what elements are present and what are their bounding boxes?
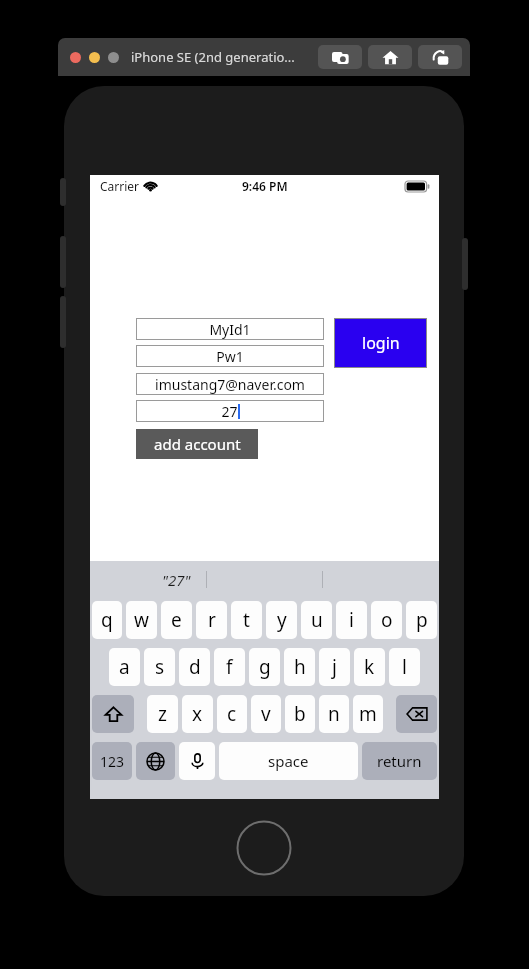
button[interactable]: t [231, 601, 262, 639]
staticText: k [364, 654, 375, 680]
button[interactable]: o [371, 601, 402, 639]
button[interactable]: add account [136, 429, 258, 459]
button[interactable]: space [219, 742, 358, 780]
staticText: u [311, 607, 323, 633]
button[interactable]: imustang7@naver.com [136, 373, 324, 395]
button[interactable]: r [196, 601, 227, 639]
button[interactable]: Change keyboard [136, 742, 175, 780]
staticText: p [416, 607, 428, 633]
button[interactable]: Home [236, 820, 292, 876]
button[interactable]: x [182, 695, 213, 733]
button[interactable]: n [319, 695, 349, 733]
button[interactable]: Dictate [179, 742, 215, 780]
button[interactable]: y [266, 601, 297, 639]
button[interactable]: v [251, 695, 281, 733]
staticText: e [171, 607, 182, 633]
staticText: imustang7@naver.com [155, 375, 305, 394]
button[interactable]: g [249, 648, 280, 686]
staticText: 9:46 PM [242, 178, 288, 194]
staticText: n [328, 701, 340, 727]
button[interactable]: Rotate [418, 45, 462, 69]
button[interactable]: e [161, 601, 192, 639]
button[interactable]: b [285, 695, 315, 733]
button[interactable]: Screenshot [318, 45, 362, 69]
staticText: o [381, 607, 393, 633]
button[interactable]: return [362, 742, 437, 780]
staticText: a [119, 654, 130, 680]
button[interactable]: a [109, 648, 140, 686]
staticText: login [362, 332, 400, 354]
button[interactable]: Pw1 [136, 345, 324, 367]
staticText: return [377, 751, 422, 771]
button[interactable]: d [179, 648, 210, 686]
button[interactable]: w [126, 601, 157, 639]
staticText: b [294, 701, 306, 727]
staticText: g [259, 654, 271, 680]
button[interactable]: c [217, 695, 247, 733]
button[interactable]: s [144, 648, 175, 686]
staticText: 123 [100, 752, 125, 771]
button[interactable]: i [336, 601, 367, 639]
button[interactable]: 27 [136, 400, 324, 422]
staticText: MyId1 [209, 320, 251, 339]
button[interactable]: MyId1 [136, 318, 324, 340]
staticText: space [268, 751, 309, 771]
button[interactable]: j [319, 648, 350, 686]
staticText: m [359, 701, 377, 727]
button[interactable]: l [389, 648, 420, 686]
staticText: v [261, 701, 271, 727]
button[interactable] [70, 52, 81, 63]
staticText: f [226, 654, 233, 680]
button[interactable]: k [354, 648, 385, 686]
button[interactable] [89, 52, 100, 63]
staticText: w [134, 607, 149, 633]
staticText: Pw1 [216, 347, 244, 366]
staticText: 27 [221, 402, 238, 421]
staticText: i [349, 607, 354, 633]
staticText: t [243, 607, 250, 633]
staticText: Carrier [100, 178, 140, 194]
button[interactable]: Shift [92, 695, 134, 733]
staticText: s [155, 654, 165, 680]
button[interactable]: Backspace [396, 695, 437, 733]
staticText: z [158, 701, 167, 727]
button[interactable]: u [301, 601, 332, 639]
button[interactable]: m [353, 695, 383, 733]
staticText: l [402, 654, 407, 680]
button[interactable]: 123 [92, 742, 132, 780]
button[interactable]: h [284, 648, 315, 686]
staticText: c [227, 701, 237, 727]
staticText: add account [154, 434, 241, 454]
button[interactable]: p [406, 601, 437, 639]
staticText: q [101, 607, 113, 633]
staticText: x [192, 701, 203, 727]
staticText: h [294, 654, 306, 680]
button[interactable] [108, 52, 119, 63]
staticText: j [332, 654, 337, 680]
button[interactable]: z [147, 695, 178, 733]
staticText: "27" [162, 570, 191, 590]
button[interactable]: q [92, 601, 122, 639]
button[interactable]: f [214, 648, 245, 686]
staticText: r [208, 607, 216, 633]
staticText: y [277, 607, 287, 633]
button[interactable]: Home [368, 45, 412, 69]
button[interactable]: login [334, 318, 427, 368]
staticText: d [189, 654, 201, 680]
staticText: iPhone SE (2nd generatio... [131, 48, 295, 66]
